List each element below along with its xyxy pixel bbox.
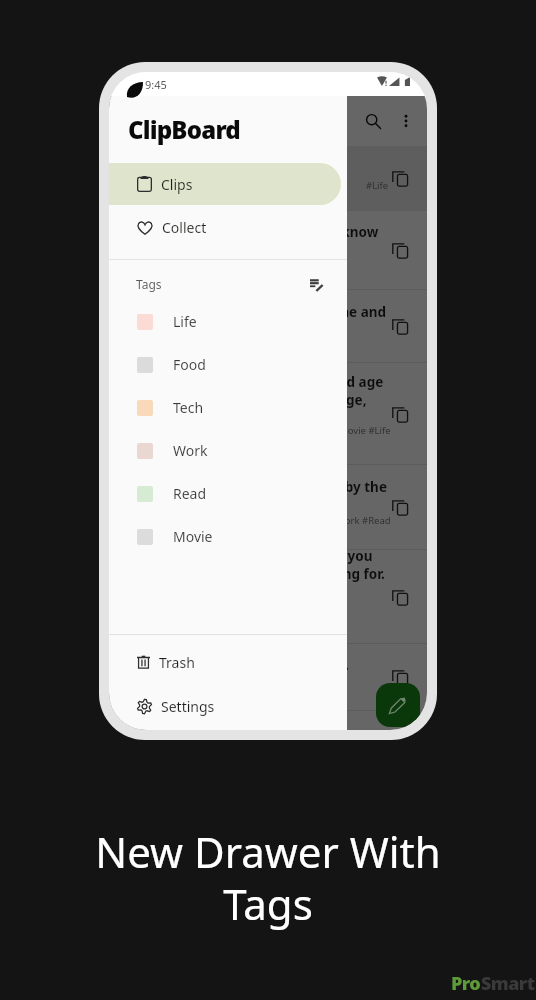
button[interactable]: Copy [109,146,427,210]
button[interactable]: Work [109,429,347,472]
button[interactable]: Life [109,300,347,343]
button[interactable]: Settings [109,684,347,728]
button[interactable]: Copy [385,662,415,692]
staticText: New Drawer With Tags [95,823,441,932]
staticText: it is a stage, [286,391,367,409]
staticText: Settings [161,697,215,716]
staticText: Work [173,441,208,460]
button[interactable]: Collect [109,205,347,250]
button[interactable]: Copy [385,163,415,193]
staticText: Greatness is by the [259,478,387,496]
button[interactable]: Copy [109,644,427,710]
button[interactable]: Copy [109,211,427,289]
button[interactable]: New clip [376,683,420,727]
staticText: Everything you [271,547,373,565]
button[interactable]: Copy [109,550,427,643]
button[interactable]: Read [109,472,347,515]
staticText: #Work #Read [330,514,391,527]
staticText: Pro [451,971,481,996]
button[interactable]: More options [393,108,419,134]
button[interactable]: Copy [385,492,415,522]
button[interactable]: Copy [109,363,427,464]
button[interactable]: Trash [109,640,347,684]
button[interactable]: Copy [385,399,415,429]
staticText: Trash [159,653,195,672]
staticText: #Movie #Life [333,424,391,437]
staticText: Lorem. [302,656,349,674]
button[interactable]: Copy [109,465,427,549]
button[interactable]: Clips [109,163,341,205]
staticText: Read [173,484,207,503]
staticText: 9:45 [145,77,167,92]
button[interactable]: Copy [385,235,415,265]
staticText: Things you should know [216,223,379,241]
staticText: ClipBoard [128,113,240,146]
button[interactable]: Movie [109,515,347,558]
staticText: are looking for. [284,565,385,583]
button[interactable]: Copy [385,582,415,612]
staticText: Tech [173,398,204,417]
staticText: Life [173,312,197,331]
button[interactable]: Edit tags [306,274,327,295]
staticText: Tags [136,276,162,292]
button[interactable]: Copy [385,311,415,341]
button[interactable]: Food [109,343,347,386]
button[interactable]: Copy [109,290,427,362]
button[interactable]: Search [356,104,390,138]
staticText: Movie [173,527,213,546]
staticText: Collect [162,218,207,237]
staticText: #Life [366,179,389,192]
staticText: The best of time and [248,303,387,321]
button[interactable]: Tech [109,386,347,429]
staticText: Smart [481,971,535,996]
staticText: Clips [161,175,193,194]
staticText: Food [173,355,206,374]
staticText: Youth is not old age [250,373,384,391]
